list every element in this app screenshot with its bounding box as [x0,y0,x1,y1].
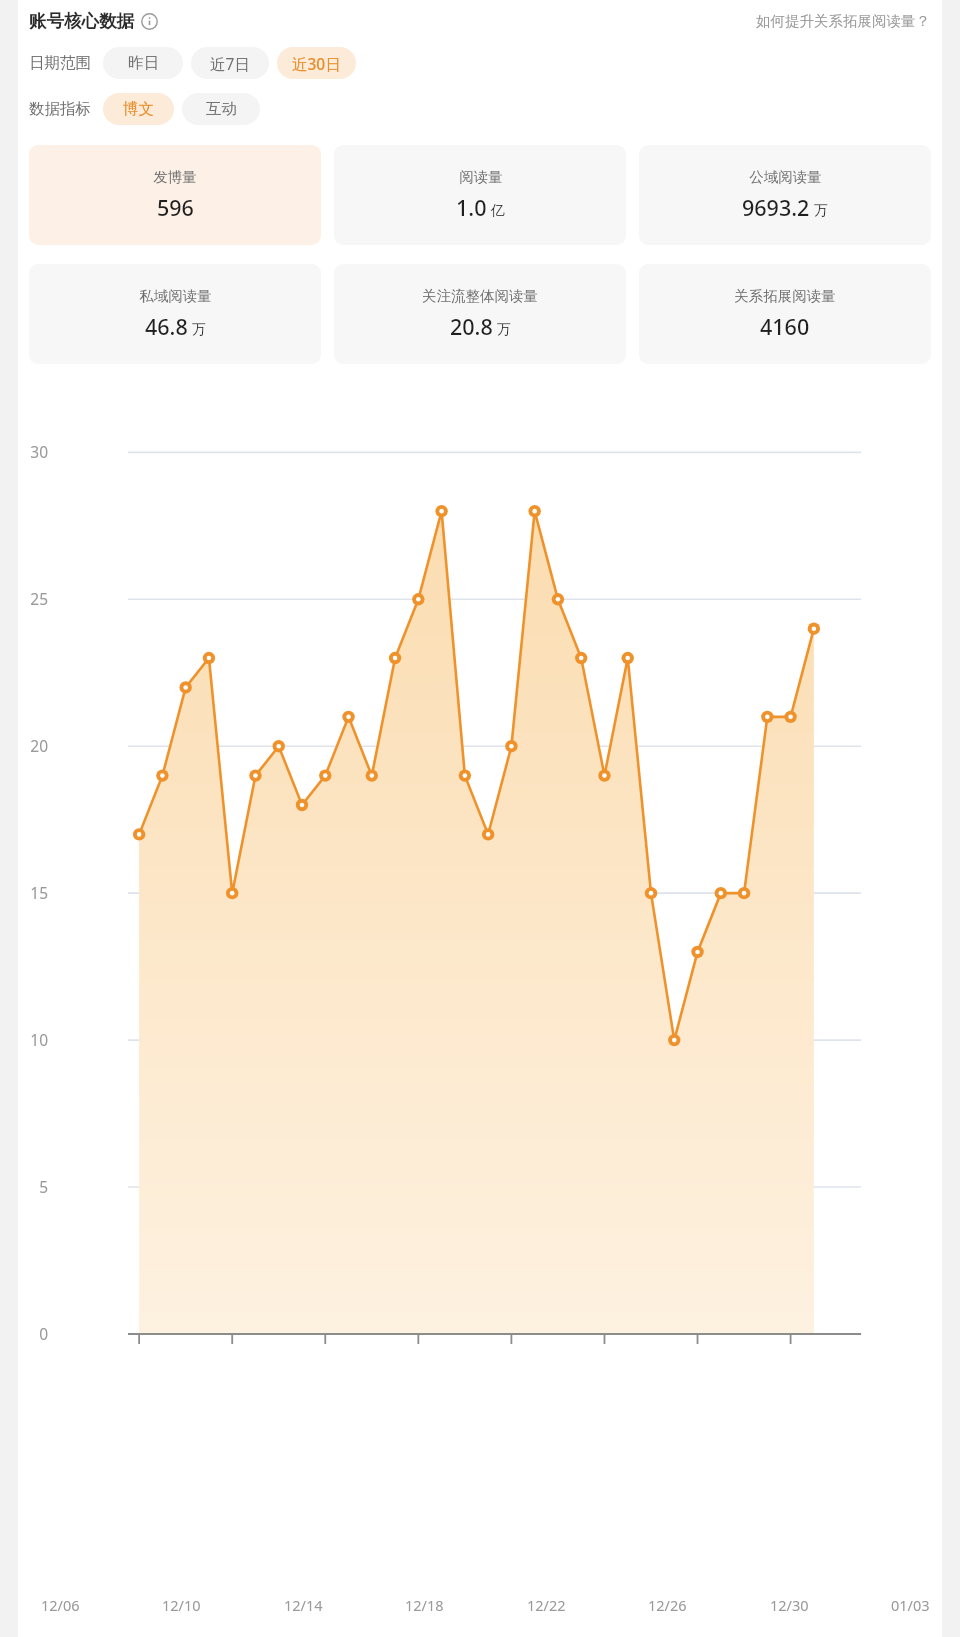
staticText: 关系拓展阅读量 [734,287,836,305]
staticText: 关注流整体阅读量 [422,287,538,305]
button[interactable]: 近30日 [277,47,356,79]
staticText: 5 [0,1176,48,1197]
staticText: 25 [0,588,48,609]
staticText: 12/06 [41,1595,80,1615]
staticText: 博文 [123,99,154,119]
button[interactable]: 如何提升关系拓展阅读量？ [756,12,930,30]
staticText: 12/26 [648,1595,687,1615]
button[interactable]: 发博量 [29,145,321,245]
button[interactable]: 关系拓展阅读量 [639,264,931,364]
staticText: 0 [0,1323,48,1344]
staticText: 万 [192,321,206,339]
staticText: 阅读量 [459,168,503,186]
staticText: 1.0 [456,193,487,222]
staticText: 12/18 [405,1595,444,1615]
staticText: 4160 [760,312,810,341]
staticText: 12/10 [162,1595,201,1615]
staticText: 15 [0,882,48,903]
button[interactable]: 近7日 [191,47,269,79]
staticText: 9693.2 [742,193,810,222]
staticText: 46.8 [145,312,188,341]
staticText: 10 [0,1029,48,1050]
staticText: 12/22 [527,1595,566,1615]
button[interactable]: 私域阅读量 [29,264,321,364]
staticText: 01/03 [891,1595,930,1615]
button[interactable]: 关注流整体阅读量 [334,264,626,364]
staticText: 近7日 [210,53,250,74]
staticText: 私域阅读量 [139,287,212,305]
button[interactable]: 博文 [103,93,174,125]
staticText: 近30日 [292,53,341,74]
staticText: 发博量 [153,168,197,186]
staticText: 数据指标 [29,99,91,119]
staticText: 如何提升关系拓展阅读量？ [756,12,930,30]
button[interactable]: 公域阅读量 [639,145,931,245]
staticText: 20 [0,735,48,756]
button[interactable]: 阅读量 [334,145,626,245]
staticText: 账号核心数据 [29,10,134,32]
staticText: 30 [0,441,48,462]
staticText: 亿 [491,202,505,220]
staticText: 互动 [206,99,237,119]
staticText: 公域阅读量 [749,168,822,186]
staticText: 万 [497,321,511,339]
staticText: 日期范围 [29,53,91,73]
staticText: 596 [157,193,194,222]
button[interactable]: 昨日 [103,47,183,79]
staticText: 昨日 [128,53,159,73]
staticText: 20.8 [450,312,493,341]
button[interactable]: 互动 [182,93,260,125]
button[interactable]: 说明 [141,13,158,30]
staticText: 万 [814,202,828,220]
staticText: 12/30 [770,1595,809,1615]
staticText: 12/14 [284,1595,323,1615]
